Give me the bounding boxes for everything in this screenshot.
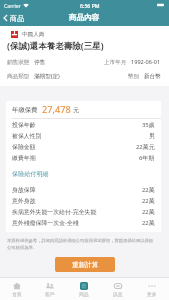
staticText: 元 xyxy=(73,106,79,113)
staticText: 男 xyxy=(149,132,155,139)
staticText: 22萬 xyxy=(142,186,155,194)
staticText: 本資料僅供參考，詳細內容請依保險公司核保規定辦理，實際承保結果以保險 xyxy=(7,238,154,243)
staticText: 年繳保費 xyxy=(12,106,38,114)
staticText: 22萬 xyxy=(142,208,155,216)
staticText: 22萬 xyxy=(142,197,155,205)
staticText: 保險給付明細 xyxy=(12,170,49,178)
staticText: 商品 xyxy=(79,291,89,297)
button[interactable]: Products xyxy=(67,278,101,300)
staticText: 意外殘廢保障一次金-全殘 xyxy=(12,219,79,227)
staticText: 繳費年期 xyxy=(12,154,36,161)
staticText: 6:56 PM xyxy=(80,2,100,9)
staticText: 被保人性別 xyxy=(12,132,42,139)
staticText: 意外身故 xyxy=(12,197,36,204)
button[interactable]: Messages xyxy=(101,278,135,300)
staticText: 保險金額 xyxy=(12,143,36,150)
button[interactable]: 商品 xyxy=(0,10,30,26)
staticText: 27,478 xyxy=(42,103,71,116)
staticText: (保誠)還本養老壽險(三星) xyxy=(7,40,104,52)
staticText: 22萬元 xyxy=(136,143,155,151)
staticText: 重新計算 xyxy=(72,261,99,269)
staticText: 投保年齡 xyxy=(12,121,36,128)
staticText: 6年期 xyxy=(139,154,155,162)
staticText: 滿期型(定) xyxy=(34,72,60,80)
staticText: 訊息 xyxy=(113,291,123,297)
staticText: 1992-06-01 xyxy=(131,58,161,66)
staticText: 上市年月 xyxy=(104,59,127,66)
staticText: 商品 xyxy=(10,14,25,23)
button[interactable]: 重新計算 xyxy=(55,257,115,272)
staticText: Carrier xyxy=(4,2,21,9)
staticText: 35歲 xyxy=(142,121,155,129)
staticText: 商品內容 xyxy=(69,13,100,23)
staticText: 新台幣 xyxy=(144,73,161,80)
staticText: 停售 xyxy=(34,59,46,66)
staticText: 疾病意外失能一次給付-完全失能 xyxy=(12,208,97,216)
staticText: 客戶 xyxy=(45,291,55,297)
staticText: 商品類型 xyxy=(7,73,30,80)
button[interactable]: Customers xyxy=(33,278,67,300)
staticText: 銷售狀態 xyxy=(7,59,30,66)
button[interactable]: Home xyxy=(0,278,33,300)
staticText: 更多 xyxy=(147,291,157,297)
button[interactable]: More xyxy=(135,278,169,300)
staticText: 中國人壽 xyxy=(22,31,45,38)
staticText: 身故保障 xyxy=(12,186,36,193)
staticText: 首頁 xyxy=(12,291,22,297)
staticText: 22萬 xyxy=(142,219,155,227)
staticText: 幣別 xyxy=(128,73,140,80)
staticText: 公司核保為準。 xyxy=(7,245,38,250)
